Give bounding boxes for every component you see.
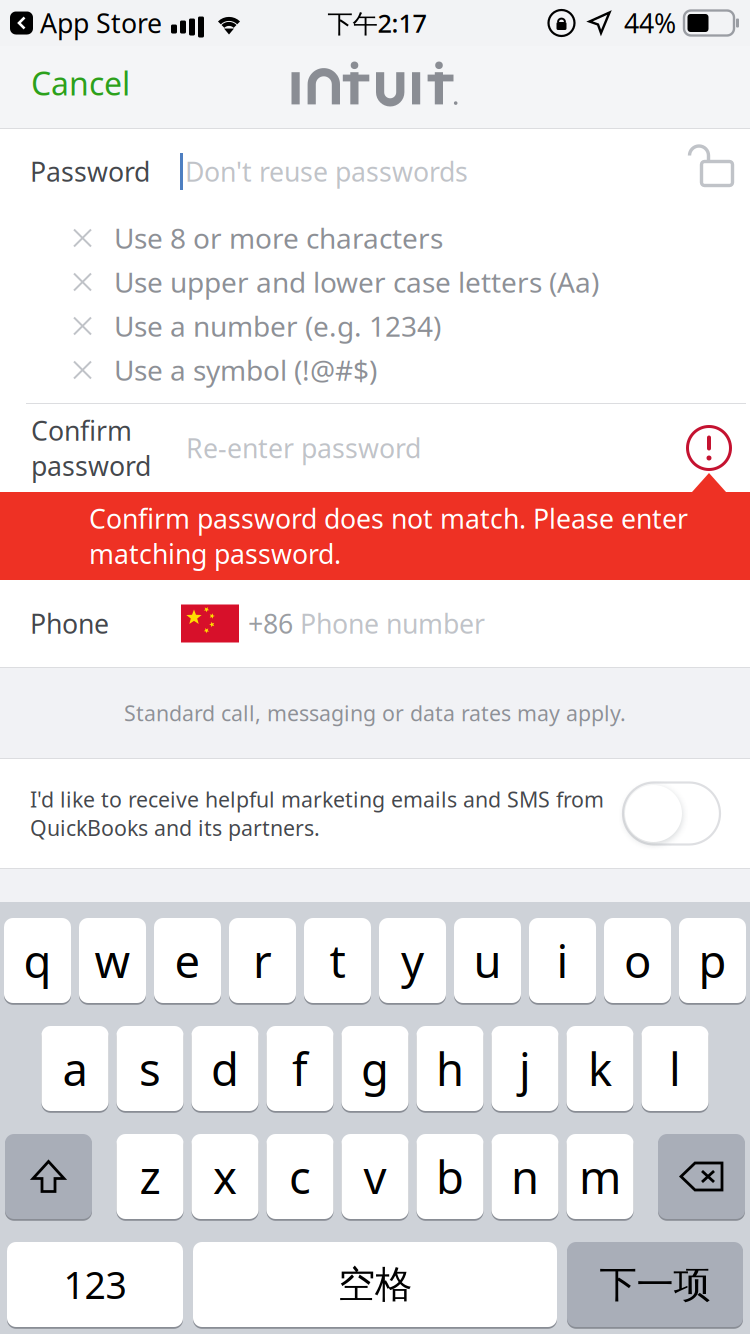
staticText: Use a symbol (!@#$) [114, 351, 377, 389]
button[interactable]: u [454, 918, 521, 1003]
staticText: 44% [624, 5, 676, 41]
staticText: s [139, 1038, 161, 1099]
staticText: Use 8 or more characters [114, 219, 443, 257]
staticText: 下午2:17 [327, 6, 426, 40]
button[interactable]: g [341, 1026, 408, 1111]
staticText: w [94, 930, 130, 991]
button[interactable]: Shift [5, 1134, 92, 1219]
staticText: f [292, 1038, 308, 1099]
button[interactable]: t [304, 918, 371, 1003]
staticText: Phone [30, 606, 109, 641]
staticText: q [23, 930, 51, 991]
staticText: k [588, 1038, 612, 1099]
button[interactable]: p [679, 918, 746, 1003]
staticText: e [174, 930, 200, 991]
staticText: r [253, 930, 272, 991]
button[interactable]: h [416, 1026, 483, 1111]
staticText: h [436, 1038, 464, 1099]
button[interactable]: Cancel [0, 42, 154, 124]
button[interactable]: x [191, 1134, 258, 1219]
button[interactable]: l [641, 1026, 708, 1111]
button[interactable]: b [416, 1134, 483, 1219]
staticText: y [401, 930, 424, 991]
staticText: c [289, 1146, 311, 1207]
button[interactable]: 123 [7, 1242, 183, 1327]
button[interactable]: s [116, 1026, 183, 1111]
staticText: g [361, 1038, 389, 1099]
button[interactable]: c [266, 1134, 333, 1219]
button[interactable]: Delete [658, 1134, 745, 1219]
staticText: Use a number (e.g. 1234) [114, 307, 441, 345]
button[interactable]: e [154, 918, 221, 1003]
button[interactable]: m [566, 1134, 633, 1219]
staticText: Confirm password does not match. Please … [89, 501, 688, 571]
staticText: 空格 [338, 1262, 412, 1307]
staticText: x [213, 1146, 237, 1207]
staticText: i [556, 930, 568, 991]
staticText: a [62, 1038, 87, 1099]
button[interactable]: d [191, 1026, 258, 1111]
staticText: d [211, 1038, 239, 1099]
staticText: v [363, 1146, 386, 1207]
button[interactable]: k [566, 1026, 633, 1111]
staticText: l [669, 1038, 681, 1099]
staticText: b [436, 1146, 464, 1207]
staticText: Don't reuse passwords [185, 154, 468, 189]
button[interactable]: Marketing emails toggle [623, 782, 720, 844]
staticText: +86 [248, 606, 300, 641]
staticText: Phone number [300, 606, 485, 641]
button[interactable]: a [41, 1026, 108, 1111]
button[interactable]: q [4, 918, 71, 1003]
staticText: o [624, 930, 651, 991]
staticText: z [139, 1146, 160, 1207]
staticText: m [579, 1146, 621, 1207]
staticText: App Store [40, 5, 162, 41]
staticText: t [329, 930, 345, 991]
staticText: Confirm password [31, 413, 151, 483]
button[interactable]: App Store [10, 5, 162, 41]
button[interactable]: 下一项 [567, 1242, 743, 1327]
staticText: Cancel [31, 62, 130, 104]
staticText: 123 [63, 1260, 126, 1309]
staticText: p [698, 930, 726, 991]
button[interactable]: 空格 [193, 1242, 557, 1327]
button[interactable]: v [341, 1134, 408, 1219]
staticText: Use upper and lower case letters (Aa) [114, 263, 599, 301]
staticText: n [511, 1146, 539, 1207]
button[interactable]: z [116, 1134, 183, 1219]
staticText: Re-enter password [186, 430, 421, 466]
button[interactable]: i [529, 918, 596, 1003]
staticText: Password [30, 154, 150, 189]
staticText: j [519, 1038, 531, 1099]
staticText: u [473, 930, 501, 991]
button[interactable]: f [266, 1026, 333, 1111]
button[interactable]: o [604, 918, 671, 1003]
button[interactable]: y [379, 918, 446, 1003]
button[interactable]: w [79, 918, 146, 1003]
button[interactable]: j [491, 1026, 558, 1111]
button[interactable]: n [491, 1134, 558, 1219]
staticText: I'd like to receive helpful marketing em… [30, 785, 604, 842]
button[interactable]: r [229, 918, 296, 1003]
staticText: 下一项 [599, 1262, 710, 1307]
staticText: Standard call, messaging or data rates m… [124, 699, 626, 727]
